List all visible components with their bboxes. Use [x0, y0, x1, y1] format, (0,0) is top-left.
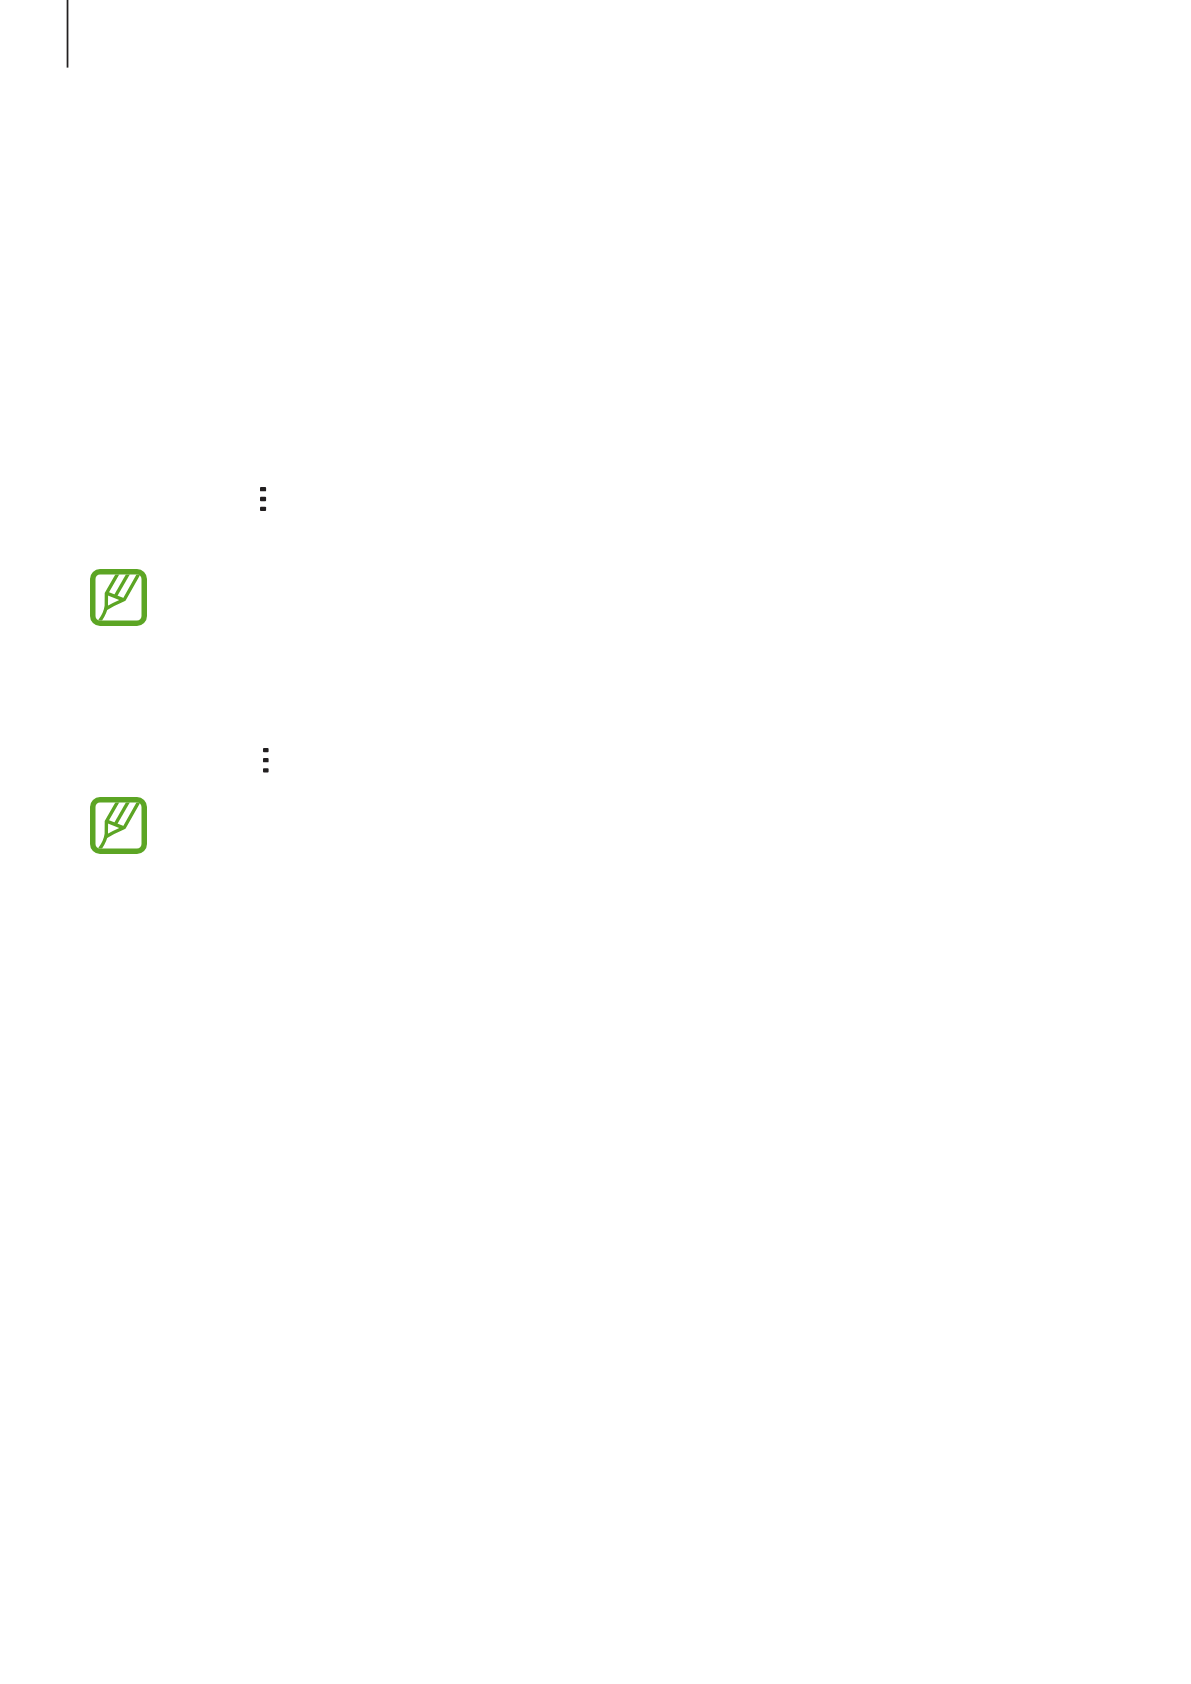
button[interactable]: More options — [260, 487, 267, 512]
button[interactable]: More options — [263, 748, 270, 773]
button[interactable]: Samsung Notes — [90, 569, 147, 626]
button[interactable]: Samsung Notes — [90, 797, 147, 854]
